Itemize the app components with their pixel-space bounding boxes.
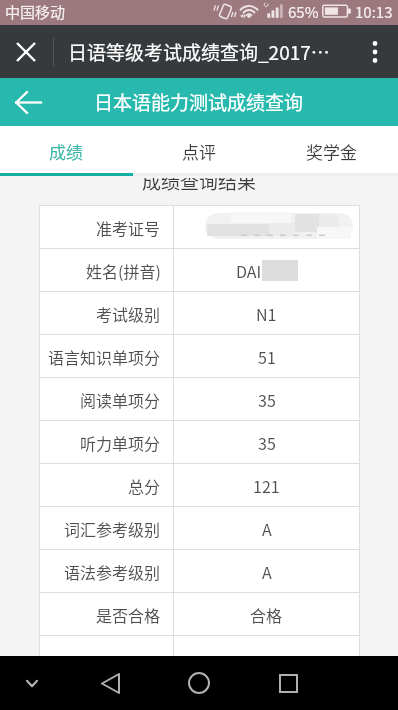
button[interactable]: 点评	[132, 126, 265, 176]
staticText: N1	[256, 302, 277, 325]
button[interactable]: More options	[346, 25, 398, 78]
staticText: 奖学金	[306, 139, 357, 164]
staticText: 点评	[182, 139, 216, 164]
staticText: 成绩查询结果	[142, 178, 257, 195]
staticText: 语言知识单项分	[48, 345, 161, 368]
staticText: 姓名(拼音)	[86, 259, 161, 282]
staticText: 准考证号	[96, 216, 161, 239]
staticText: 成绩	[49, 139, 83, 164]
staticText: 35	[258, 431, 276, 454]
staticText: 听力单项分	[80, 431, 161, 454]
staticText: 词汇参考级别	[64, 517, 161, 540]
button[interactable]: Back	[88, 661, 132, 705]
button[interactable]: Recent apps	[266, 661, 310, 705]
staticText: 中国移动	[5, 1, 66, 23]
staticText: 35	[258, 388, 276, 411]
button[interactable]: Back	[0, 78, 52, 126]
button[interactable]: Home	[177, 661, 221, 705]
staticText: 是否合格	[96, 603, 161, 626]
staticText: A	[262, 517, 272, 540]
staticText: 合格	[250, 603, 283, 626]
staticText: A	[262, 560, 272, 583]
staticText: 语法参考级别	[64, 560, 161, 583]
staticText: 10:13	[355, 1, 393, 23]
button[interactable]: 奖学金	[265, 126, 398, 176]
staticText: 总分	[128, 474, 161, 497]
staticText: 阅读单项分	[80, 388, 161, 411]
staticText: 日语等级考试成绩查询_2017…	[68, 38, 330, 66]
staticText: 日本语能力测试成绩查询	[94, 88, 304, 116]
button[interactable]: Close	[0, 25, 52, 78]
staticText: 考试级别	[96, 302, 161, 325]
button[interactable]: 成绩	[0, 126, 132, 176]
staticText: DAI	[236, 259, 262, 282]
button[interactable]: Hide keyboard	[10, 661, 54, 705]
staticText: 51	[258, 345, 276, 368]
staticText: 65%	[288, 1, 319, 23]
staticText: 121	[253, 474, 280, 497]
